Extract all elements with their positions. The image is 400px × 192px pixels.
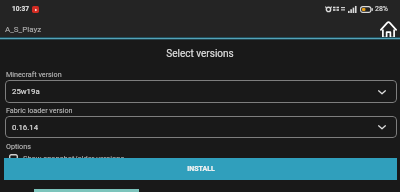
button[interactable]: 25w19a [5,80,397,103]
staticText: Show snapshot/older versions [23,154,125,163]
button[interactable]: 0.16.14 [5,116,397,138]
staticText: Select versions [0,48,400,60]
staticText: Minecraft version [6,70,62,78]
staticText: 0.16.14 [12,123,39,132]
staticText: 28% [375,5,388,13]
button[interactable]: Show snapshot/older versions [9,153,169,163]
staticText: 10:37 [12,5,29,13]
button[interactable]: INSTALL [4,158,397,180]
staticText: A_S_Playz [5,25,42,34]
staticText: Fabric loader version [6,106,73,114]
staticText: INSTALL [187,165,215,173]
staticText: Options [6,142,31,150]
staticText: 25w19a [12,87,40,96]
button[interactable]: Home [380,21,397,38]
